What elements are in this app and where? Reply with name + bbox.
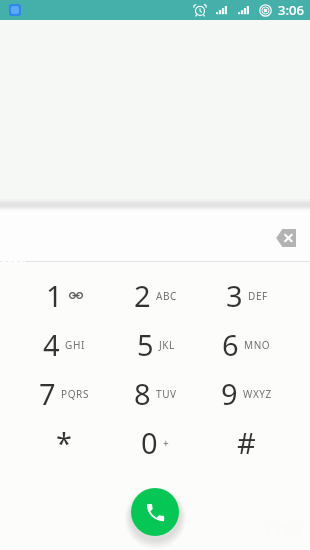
button[interactable]: 5	[110, 320, 201, 369]
staticText: +	[163, 436, 170, 450]
button[interactable]: 2	[110, 271, 201, 320]
button[interactable]: *	[18, 418, 110, 467]
staticText: 1	[46, 276, 63, 315]
button[interactable]: 0	[110, 418, 201, 467]
staticText: 0	[141, 423, 158, 462]
button[interactable]: Call	[131, 488, 179, 536]
staticText: 6	[222, 325, 239, 364]
staticText: WXYZ	[243, 387, 272, 401]
button[interactable]: 4	[18, 320, 110, 369]
staticText: JKL	[159, 338, 175, 352]
button[interactable]: 7	[18, 369, 110, 418]
staticText: DEF	[248, 289, 268, 303]
staticText: 5	[137, 325, 154, 364]
staticText: 9	[221, 374, 238, 413]
staticText: MNO	[244, 338, 271, 352]
staticText: 3	[226, 276, 243, 315]
staticText: 7	[39, 374, 56, 413]
button[interactable]: 6	[201, 320, 292, 369]
staticText: 8	[134, 374, 151, 413]
staticText: TUV	[156, 387, 177, 401]
staticText: ABC	[156, 289, 178, 303]
staticText: #	[237, 423, 256, 462]
button[interactable]: 3	[201, 271, 292, 320]
button[interactable]: 1	[18, 271, 110, 320]
staticText: 3:06	[278, 1, 304, 19]
button[interactable]: Backspace	[269, 221, 303, 255]
button[interactable]: #	[201, 418, 292, 467]
button[interactable]: 8	[110, 369, 201, 418]
staticText: *	[56, 423, 72, 462]
staticText: GHI	[65, 338, 85, 352]
staticText: 2	[134, 276, 151, 315]
button[interactable]: 9	[201, 369, 292, 418]
staticText: PQRS	[61, 387, 89, 401]
staticText: 4	[43, 325, 60, 364]
